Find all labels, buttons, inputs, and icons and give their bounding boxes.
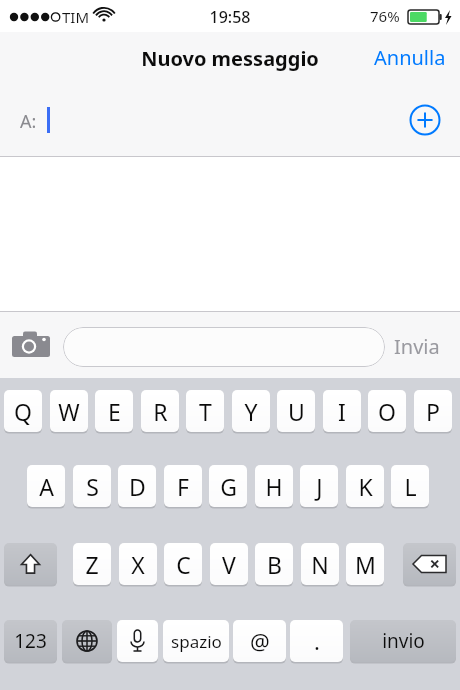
staticText: W — [58, 396, 80, 427]
staticText: 76% — [370, 6, 400, 26]
button[interactable]: Y — [232, 390, 270, 432]
staticText: @ — [250, 626, 270, 656]
button[interactable]: G — [209, 465, 247, 507]
button[interactable]: Dettatura — [117, 620, 158, 662]
staticText: Annulla — [374, 44, 446, 71]
staticText: 123 — [14, 628, 47, 654]
staticText: L — [404, 471, 417, 502]
button[interactable]: spazio — [163, 620, 229, 662]
button[interactable]: Q — [4, 390, 42, 432]
staticText: H — [265, 471, 283, 502]
staticText: A — [39, 471, 54, 502]
staticText: V — [222, 549, 236, 580]
staticText: F — [177, 471, 189, 502]
button[interactable]: W — [50, 390, 88, 432]
staticText: U — [288, 396, 305, 427]
staticText: G — [220, 471, 237, 502]
staticText: B — [267, 549, 282, 580]
button[interactable]: M — [346, 543, 384, 585]
button[interactable]: E — [95, 390, 133, 432]
staticText: 19:58 — [0, 6, 460, 28]
button[interactable]: U — [277, 390, 315, 432]
staticText: Q — [14, 396, 32, 427]
button[interactable]: B — [255, 543, 293, 585]
button[interactable]: Fotocamera — [8, 329, 56, 361]
staticText: I — [338, 396, 346, 427]
staticText: D — [129, 471, 146, 502]
button[interactable]: . — [290, 620, 343, 662]
button[interactable]: H — [255, 465, 293, 507]
button[interactable]: Cancella — [403, 543, 456, 585]
staticText: K — [358, 471, 373, 502]
staticText: S — [86, 471, 99, 502]
staticText: A: — [20, 109, 37, 134]
button[interactable]: Invia — [390, 333, 444, 360]
button[interactable]: X — [119, 543, 157, 585]
button[interactable]: P — [414, 390, 452, 432]
button[interactable]: @ — [233, 620, 286, 662]
staticText: TIM — [62, 7, 90, 27]
staticText: M — [355, 549, 376, 580]
button[interactable]: V — [210, 543, 248, 585]
button[interactable]: Annulla — [368, 36, 452, 79]
staticText: E — [108, 396, 121, 427]
staticText: O — [378, 396, 396, 427]
staticText: J — [316, 471, 323, 502]
button[interactable]: Maiuscole — [4, 543, 57, 585]
button[interactable]: C — [164, 543, 202, 585]
staticText: . — [314, 626, 320, 656]
staticText: Y — [244, 396, 258, 427]
staticText: C — [176, 549, 191, 580]
button[interactable]: J — [300, 465, 338, 507]
button[interactable]: Cambia tastiera — [62, 620, 112, 662]
staticText: spazio — [171, 630, 222, 653]
button[interactable]: F — [164, 465, 202, 507]
staticText: Nuovo messaggio — [0, 45, 460, 72]
staticText: invio — [382, 628, 425, 654]
button[interactable]: A — [27, 465, 65, 507]
staticText: N — [311, 549, 329, 580]
button[interactable]: D — [118, 465, 156, 507]
button[interactable] — [63, 327, 385, 367]
button[interactable]: O — [368, 390, 406, 432]
button[interactable]: S — [73, 465, 111, 507]
button[interactable]: N — [301, 543, 339, 585]
button[interactable]: 123 — [4, 620, 57, 662]
button[interactable]: I — [323, 390, 361, 432]
button[interactable]: invio — [350, 620, 456, 662]
staticText: T — [199, 396, 212, 427]
button[interactable]: R — [141, 390, 179, 432]
staticText: Z — [85, 549, 99, 580]
button[interactable]: K — [346, 465, 384, 507]
staticText: X — [131, 549, 145, 580]
button[interactable]: L — [391, 465, 429, 507]
staticText: R — [153, 396, 168, 427]
button[interactable]: Aggiungi contatto — [409, 104, 441, 136]
button[interactable]: T — [186, 390, 224, 432]
staticText: Invia — [394, 333, 440, 360]
button[interactable]: Z — [73, 543, 111, 585]
staticText: P — [426, 396, 440, 427]
